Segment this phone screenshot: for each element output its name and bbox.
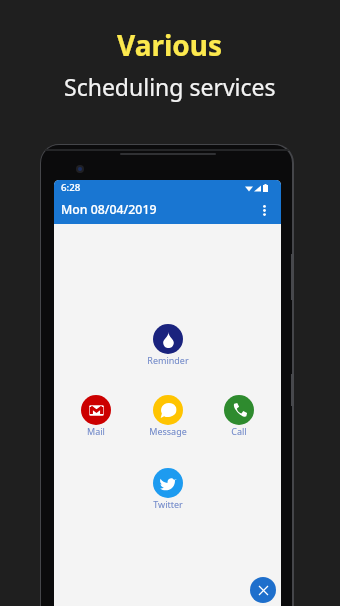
staticText: Various <box>117 26 223 64</box>
staticText: Call <box>231 425 247 437</box>
button[interactable]: Reminder <box>138 324 198 366</box>
button[interactable]: Call <box>209 395 269 437</box>
staticText: Scheduling services <box>64 71 276 102</box>
button[interactable]: Twitter <box>138 468 198 510</box>
staticText: Reminder <box>147 354 189 366</box>
staticText: Message <box>149 425 187 437</box>
staticText: 6:28 <box>61 181 81 194</box>
staticText: Mon 08/04/2019 <box>61 201 157 218</box>
staticText: Mail <box>87 425 105 437</box>
button[interactable]: Mail <box>66 395 126 437</box>
staticText: Twitter <box>153 498 183 510</box>
button[interactable]: More options <box>256 202 272 218</box>
button[interactable]: Message <box>138 395 198 437</box>
button[interactable]: Close <box>250 577 276 603</box>
